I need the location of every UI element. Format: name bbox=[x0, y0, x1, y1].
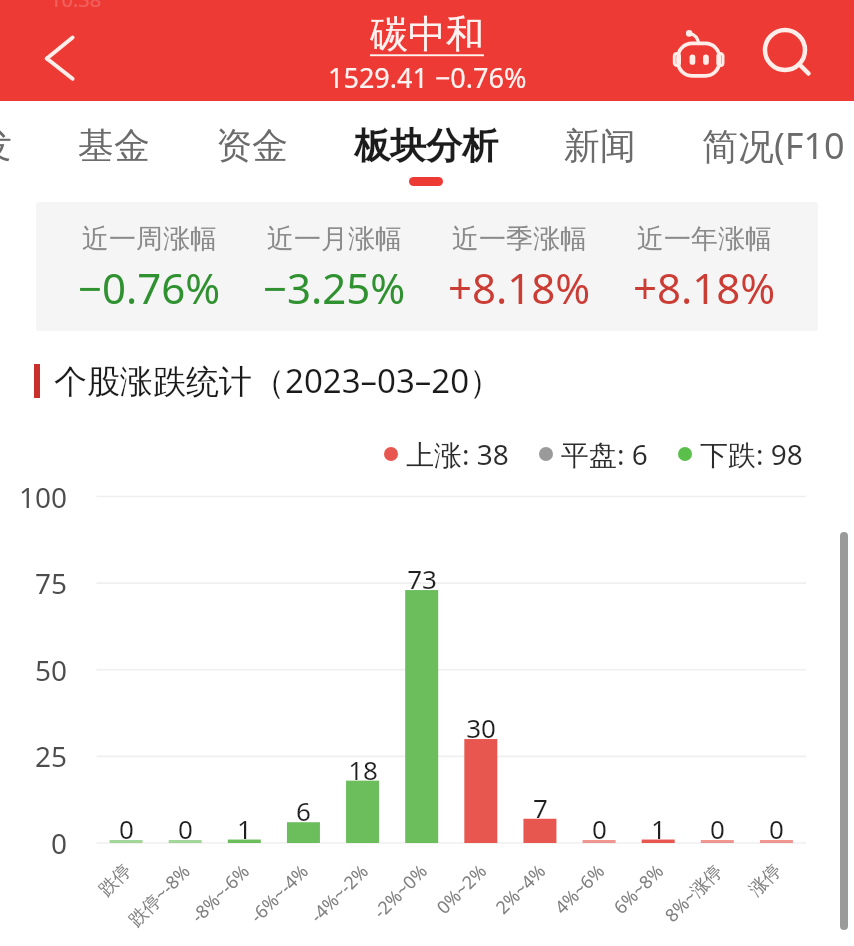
staticText: 0 bbox=[178, 811, 193, 840]
button[interactable]: Search bbox=[754, 20, 822, 88]
staticText: 1 bbox=[651, 811, 666, 840]
staticText: -4%~-2% bbox=[305, 859, 374, 928]
staticText: 0 bbox=[119, 811, 134, 840]
staticText: 0%~2% bbox=[431, 859, 492, 920]
staticText: 近一周涨幅 bbox=[82, 222, 217, 256]
staticText: 基金 bbox=[78, 123, 150, 168]
staticText: 7 bbox=[533, 790, 548, 819]
staticText: +8.18% bbox=[448, 259, 591, 316]
staticText: 近一年涨幅 bbox=[637, 222, 772, 256]
staticText: 8%~涨停 bbox=[659, 859, 728, 927]
staticText: 6 bbox=[296, 793, 311, 822]
staticText: 近一季涨幅 bbox=[452, 222, 587, 256]
staticText: 1 bbox=[237, 811, 252, 840]
staticText: 上涨: 38 bbox=[406, 435, 509, 473]
staticText: 平盘: 6 bbox=[561, 435, 648, 473]
button[interactable]: 基金 bbox=[45, 101, 183, 193]
staticText: 2%~4% bbox=[490, 859, 551, 920]
staticText: -2%~0% bbox=[368, 859, 433, 924]
staticText: 30 bbox=[466, 710, 496, 739]
button[interactable]: 简况(F10 bbox=[669, 101, 854, 193]
staticText: 10:38 bbox=[50, 0, 102, 13]
button[interactable]: 板块分析 bbox=[321, 101, 531, 193]
staticText: −0.76% bbox=[78, 259, 221, 316]
staticText: 简况(F10 bbox=[702, 121, 845, 170]
staticText: 跌停 bbox=[94, 859, 136, 901]
button[interactable]: Back bbox=[26, 26, 90, 90]
staticText: 近一月涨幅 bbox=[267, 222, 402, 256]
staticText: 0 bbox=[769, 811, 784, 840]
staticText: 73 bbox=[407, 561, 437, 590]
staticText: 个股涨跌统计（2023–03–20） bbox=[54, 358, 503, 403]
staticText: 新闻 bbox=[564, 123, 636, 168]
staticText: 0 bbox=[592, 811, 607, 840]
staticText: 0 bbox=[51, 824, 68, 862]
staticText: −3.25% bbox=[263, 259, 406, 316]
button[interactable]: AI assistant bbox=[666, 21, 734, 89]
staticText: -8%~-6% bbox=[186, 859, 255, 928]
staticText: 6%~8% bbox=[608, 859, 669, 920]
staticText: 25 bbox=[35, 737, 68, 775]
button[interactable]: 发 bbox=[0, 101, 45, 193]
staticText: 1529.41 −0.76% bbox=[328, 59, 527, 96]
staticText: 资金 bbox=[216, 123, 288, 168]
staticText: 下跌: 98 bbox=[700, 435, 803, 473]
staticText: 50 bbox=[35, 651, 68, 689]
staticText: 4%~6% bbox=[549, 859, 610, 920]
staticText: 跌停~-8% bbox=[123, 859, 196, 932]
staticText: 发 bbox=[0, 123, 12, 168]
staticText: 0 bbox=[710, 811, 725, 840]
staticText: 100 bbox=[19, 478, 68, 516]
staticText: +8.18% bbox=[633, 259, 776, 316]
staticText: -6%~-4% bbox=[245, 859, 314, 928]
staticText: 板块分析 bbox=[354, 123, 498, 168]
staticText: 18 bbox=[348, 752, 378, 781]
staticText: 碳中和 bbox=[370, 10, 484, 58]
staticText: 75 bbox=[35, 564, 68, 602]
staticText: 涨停 bbox=[744, 859, 786, 901]
button[interactable]: 资金 bbox=[183, 101, 321, 193]
button[interactable]: 新闻 bbox=[531, 101, 669, 193]
